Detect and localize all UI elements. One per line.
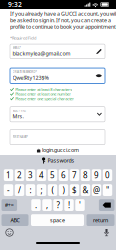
button[interactable]: $ [70, 184, 79, 196]
button[interactable]: " [103, 184, 112, 196]
staticText: space [50, 217, 65, 224]
staticText: blackmylea@gmail.com [13, 50, 71, 57]
button[interactable]: 5 [48, 169, 57, 181]
staticText: CREATE PASSWORD* [13, 70, 37, 74]
staticText: ABC [10, 217, 19, 224]
button[interactable]: 8 [81, 169, 90, 181]
button[interactable]: 7 [70, 169, 79, 181]
button[interactable]: ; [37, 184, 46, 196]
staticText: Mrs. [13, 113, 24, 120]
staticText: , [46, 200, 48, 210]
button[interactable]: 1 [4, 169, 13, 181]
button[interactable]: 6 [59, 169, 68, 181]
staticText: 9:32 [8, 0, 22, 9]
button[interactable]: ) [59, 184, 68, 196]
staticText: 2 [17, 170, 22, 180]
button[interactable]: 3 [26, 169, 35, 181]
staticText: 1 [6, 170, 11, 180]
staticText: - [7, 185, 10, 195]
button[interactable]: @ [92, 184, 101, 196]
button[interactable]: 9 [92, 169, 101, 181]
button[interactable]: FIRST NAME* [10, 129, 105, 145]
button[interactable]: ' [75, 199, 85, 211]
staticText: ? [56, 200, 59, 210]
staticText: 6 [61, 170, 66, 180]
staticText: 3 [28, 170, 33, 180]
button[interactable]: EMAIL* [10, 44, 105, 59]
staticText: ( [51, 185, 53, 195]
staticText: 9 [94, 170, 99, 180]
button[interactable]: , [42, 199, 52, 211]
staticText: Please enter one special character [15, 96, 74, 101]
staticText: / [18, 185, 21, 195]
button[interactable]: #+= [1, 199, 17, 211]
staticText: return [93, 217, 108, 224]
button[interactable]: Emoji [5, 228, 14, 237]
staticText: Passwords [47, 157, 74, 164]
staticText: ) [62, 185, 64, 195]
staticText: FIRST NAME* [13, 135, 28, 139]
button[interactable]: Delete [99, 199, 114, 211]
button[interactable]: ! [64, 199, 74, 211]
staticText: #+= [5, 202, 14, 209]
staticText: 8 [83, 170, 88, 180]
button[interactable]: space [31, 214, 84, 226]
staticText: @ [93, 185, 100, 195]
staticText: ' [79, 200, 81, 210]
staticText: 0 [105, 170, 110, 180]
button[interactable]: - [4, 184, 13, 196]
staticText: . [35, 200, 37, 210]
button[interactable]: Passwords [0, 155, 116, 166]
staticText: 7 [72, 170, 77, 180]
staticText: SELECT TITLE [13, 109, 26, 112]
button[interactable]: ABC [1, 214, 28, 226]
button[interactable]: 0 [103, 169, 112, 181]
button[interactable]: ( [48, 184, 57, 196]
staticText: ! [68, 200, 70, 210]
button[interactable]: return [86, 214, 114, 226]
staticText: " [106, 185, 109, 195]
staticText: 4 [39, 170, 44, 180]
staticText: Please enter at least 8 characters [15, 87, 72, 92]
button[interactable]: : [26, 184, 35, 196]
staticText: ; [40, 185, 42, 195]
staticText: Qwe!Rty123$% [13, 74, 49, 81]
button[interactable]: CREATE PASSWORD* [10, 68, 105, 83]
button[interactable]: & [81, 184, 90, 196]
staticText: & [82, 185, 88, 195]
staticText: login.gucci.com [42, 146, 79, 154]
button[interactable]: / [15, 184, 24, 196]
staticText: EMAIL* [13, 46, 21, 49]
staticText: $ [72, 185, 77, 195]
staticText: *Required Field [10, 35, 36, 40]
staticText: Please enter at least one number [15, 91, 71, 97]
staticText: If you already have a GUCCI account, you… [10, 10, 116, 30]
button[interactable]: ? [53, 199, 63, 211]
button[interactable]: . [31, 199, 41, 211]
button[interactable]: Dictation [102, 228, 111, 237]
button[interactable]: 4 [37, 169, 46, 181]
button[interactable]: login.gucci.com [0, 145, 116, 155]
staticText: : [29, 185, 31, 195]
staticText: 5 [50, 170, 55, 180]
button[interactable]: SELECT TITLE [10, 107, 105, 122]
button[interactable]: 2 [15, 169, 24, 181]
